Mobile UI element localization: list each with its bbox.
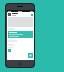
button[interactable] bbox=[8, 31, 33, 38]
button[interactable]: Add bbox=[28, 53, 33, 58]
button[interactable]: More options bbox=[7, 12, 34, 17]
